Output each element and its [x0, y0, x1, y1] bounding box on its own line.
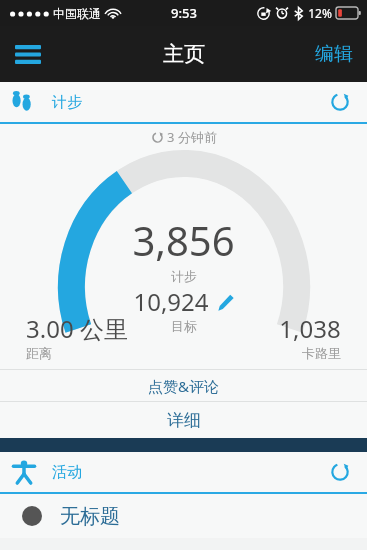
button[interactable]: Refresh activity: [325, 457, 355, 487]
button[interactable]: 活动: [0, 452, 367, 492]
button[interactable]: 详细: [0, 402, 367, 438]
staticText: 3,856: [132, 213, 235, 267]
button[interactable]: Edit goal: [215, 292, 235, 312]
staticText: 中国联通: [53, 6, 101, 21]
staticText: 10,924: [133, 285, 209, 318]
button[interactable]: 点赞&评论: [0, 370, 367, 401]
button[interactable]: 编辑: [301, 26, 367, 82]
staticText: 距离: [26, 345, 52, 361]
staticText: 3.00 公里: [26, 312, 128, 345]
staticText: 点赞&评论: [148, 376, 219, 396]
staticText: 编辑: [315, 42, 353, 66]
staticText: 计步: [52, 93, 82, 112]
button[interactable]: Refresh steps: [325, 87, 355, 117]
staticText: 1,038: [279, 312, 341, 345]
staticText: 计步: [171, 268, 197, 284]
staticText: 活动: [52, 463, 82, 482]
staticText: 详细: [167, 410, 201, 431]
staticText: 主页: [163, 41, 205, 67]
staticText: 9:53: [171, 4, 197, 22]
staticText: 3 分钟前: [167, 128, 217, 146]
staticText: 12%: [308, 5, 332, 21]
button[interactable]: 计步: [0, 82, 367, 122]
staticText: 目标: [171, 318, 197, 334]
button[interactable]: Menu: [0, 26, 56, 82]
button[interactable]: 无标题: [0, 494, 367, 538]
staticText: 无标题: [60, 504, 120, 529]
staticText: 卡路里: [302, 345, 341, 361]
